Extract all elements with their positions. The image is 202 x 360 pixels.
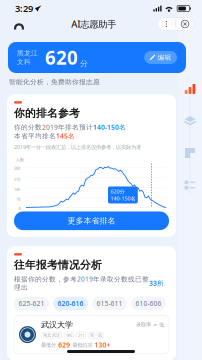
staticText: 武汉大学	[41, 320, 73, 330]
staticText: 最低分	[41, 342, 56, 348]
staticText: 620分	[110, 188, 124, 195]
button[interactable]: 615-611	[92, 297, 127, 310]
button[interactable]: Rankings	[184, 84, 196, 94]
staticText: 2019年一分一段表汇总，以上排名仅供参考，以实际为准	[14, 143, 141, 150]
staticText: 629	[58, 340, 70, 349]
staticText: 3:29	[15, 2, 33, 15]
staticText: 211	[78, 332, 84, 338]
staticText: 210	[14, 176, 20, 182]
staticText: 双一流	[90, 333, 102, 337]
button[interactable]: 620-616	[53, 297, 88, 310]
button[interactable]: More	[157, 17, 175, 30]
staticText: 140	[14, 186, 20, 192]
staticText: 本省平均排名	[14, 132, 56, 140]
staticText: 33所	[149, 279, 164, 288]
staticText: 620	[45, 45, 78, 70]
staticText: 130+	[95, 340, 111, 349]
staticText: 分	[80, 59, 88, 68]
staticText: 黑龙江	[17, 49, 38, 57]
staticText: 985	[66, 332, 72, 338]
staticText: 610-606	[135, 299, 161, 308]
button[interactable]: Reports	[184, 180, 195, 190]
staticText: AI志愿助手	[71, 18, 116, 30]
staticText: 录取率 ≈ 低	[136, 321, 164, 328]
staticText: 615-611	[96, 299, 122, 308]
staticText: 1分	[24, 210, 30, 216]
staticText: 145名	[56, 131, 75, 140]
staticText: 140-150名	[110, 195, 135, 202]
staticText: 更多本省排名	[67, 216, 115, 226]
button[interactable]: 编辑	[144, 51, 177, 64]
button[interactable]: 610-606	[131, 297, 166, 310]
staticText: 140-150名	[93, 123, 126, 132]
staticText: 你的分数2019年排名预计	[14, 123, 93, 132]
staticText: 280	[14, 165, 20, 171]
staticText: 70	[16, 196, 20, 202]
staticText: 你的排名参考	[14, 107, 80, 120]
staticText: 人数	[16, 157, 24, 162]
button[interactable]: Home	[8, 16, 30, 32]
staticText: 往年报考情况分析	[14, 258, 102, 272]
staticText: 646-750	[142, 210, 155, 216]
staticText: 620-616	[57, 299, 83, 308]
button[interactable]: Majors	[184, 116, 195, 126]
staticText: 最低位次	[72, 342, 92, 348]
button[interactable]: 更多本省排名	[14, 211, 169, 230]
staticText: 根据你的分数，参考2019年录取分数线已整理出	[14, 275, 149, 292]
button[interactable]: Schools	[185, 148, 195, 158]
button[interactable]: 武汉大学	[14, 315, 169, 354]
staticText: 文科	[17, 58, 31, 66]
button[interactable]: Close	[176, 17, 194, 30]
staticText: 编辑	[157, 53, 171, 62]
staticText: 湖北 武汉	[43, 333, 60, 337]
button[interactable]: 625-621	[14, 297, 49, 310]
staticText: 智能化分析，免费助你报志愿	[9, 78, 100, 86]
staticText: 625-621	[18, 299, 44, 308]
staticText: 0	[19, 205, 21, 211]
